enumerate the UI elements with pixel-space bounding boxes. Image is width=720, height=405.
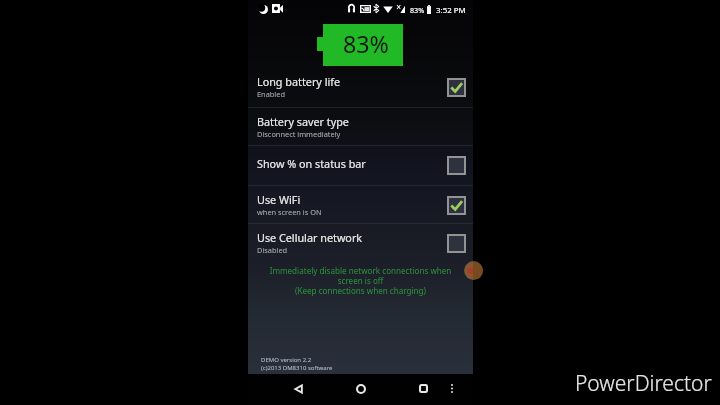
- button[interactable]: Back: [283, 373, 313, 404]
- staticText: Enabled: [257, 89, 285, 99]
- staticText: when screen is ON: [257, 207, 322, 217]
- staticText: Immediately disable network connections …: [256, 265, 465, 296]
- staticText: Long battery life: [257, 74, 341, 89]
- button[interactable]: Recents: [408, 373, 438, 404]
- staticText: Use WiFi: [257, 192, 301, 207]
- button[interactable]: Use Cellular network: [248, 224, 473, 262]
- staticText: 83%: [410, 5, 425, 15]
- button[interactable]: Use WiFi: [248, 186, 473, 224]
- staticText: Battery saver type: [257, 114, 349, 129]
- button[interactable]: Show % on status bar: [248, 146, 473, 184]
- staticText: Show % on status bar: [257, 156, 366, 171]
- staticText: (c)2013 DM8310 software: [261, 364, 333, 372]
- button[interactable]: Home: [346, 373, 376, 404]
- button[interactable]: Checked: [449, 80, 464, 95]
- button[interactable]: Long battery life: [248, 68, 473, 106]
- button[interactable]: More options: [437, 373, 467, 404]
- button[interactable]: Checked: [449, 198, 464, 213]
- staticText: DEMO version 2.2: [261, 356, 312, 364]
- staticText: Disconnect immediately: [257, 129, 341, 139]
- staticText: PowerDirector: [575, 369, 712, 398]
- staticText: 3:52 PM: [436, 5, 466, 16]
- staticText: Use Cellular network: [257, 230, 363, 245]
- staticText: Disabled: [257, 245, 288, 255]
- button[interactable]: Battery saver type: [248, 108, 473, 146]
- staticText: 83%: [343, 28, 389, 60]
